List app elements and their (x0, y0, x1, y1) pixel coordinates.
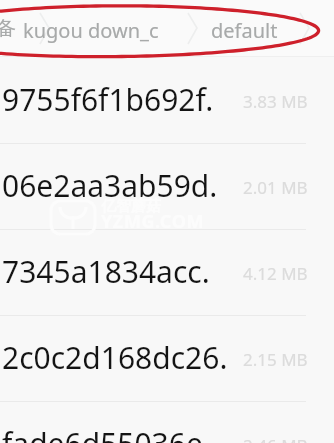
staticText: 7345a1834acc. (2, 251, 210, 292)
button[interactable]: 备 (0, 16, 16, 41)
button[interactable]: down_c (88, 17, 159, 44)
staticText: 9755f6f1b692f. (2, 79, 214, 120)
button[interactable]: kugou (23, 17, 83, 44)
button[interactable]: 06e2aa3ab59d. (0, 143, 334, 229)
staticText: 06e2aa3ab59d. (2, 165, 218, 206)
button[interactable]: 9755f6f1b692f. (0, 57, 334, 143)
staticText: 2.01 MB (243, 176, 308, 199)
button[interactable]: 2c0c2d168dc26. (0, 315, 334, 401)
staticText: 3.83 MB (243, 90, 308, 113)
staticText: fade6d55036e. (2, 423, 211, 443)
staticText: 4.12 MB (243, 262, 308, 285)
staticText: 2.15 MB (243, 348, 308, 371)
button[interactable]: fade6d55036e. (0, 401, 334, 443)
staticText: 2.46 MB (243, 434, 308, 443)
staticText: YZMG.COM (101, 209, 205, 234)
staticText: 2c0c2d168dc26. (2, 337, 228, 378)
button[interactable]: default (211, 17, 278, 44)
button[interactable]: 7345a1834acc. (0, 229, 334, 315)
